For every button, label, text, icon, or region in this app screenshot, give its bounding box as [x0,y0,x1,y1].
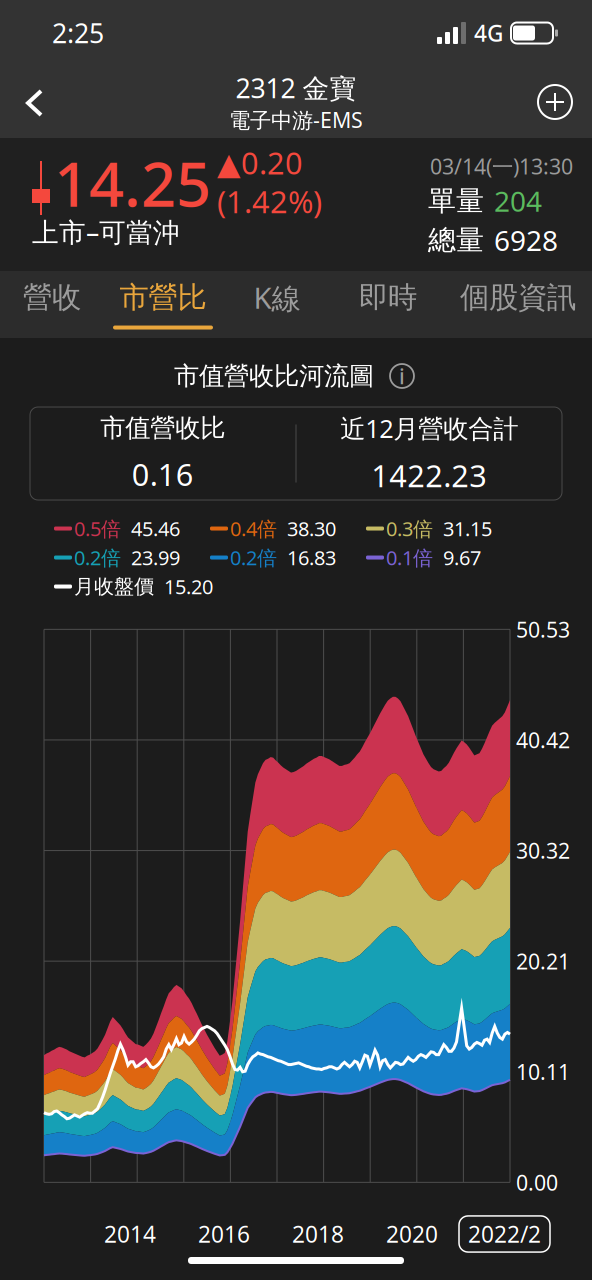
button[interactable]: 即時 [332,271,444,338]
staticText: 即時 [359,279,417,315]
staticText: 9.67 [443,544,481,571]
staticText: 單量 [428,184,484,218]
staticText: 個股資訊 [460,279,576,315]
staticText: 0.3倍 [386,515,433,542]
button[interactable]: Add to watchlist [532,79,578,125]
staticText: 近12月營收合計 [340,411,518,445]
button[interactable]: K線 [222,271,332,338]
staticText: 0.2倍 [230,544,277,571]
staticText: 2014 [104,1219,156,1249]
staticText: 市值營收比 [100,413,225,444]
staticText: 電子中游-EMS [229,105,363,134]
staticText: 23.99 [131,544,180,571]
staticText: 市營比 [119,279,206,315]
button[interactable]: 市營比 [104,271,222,338]
staticText: 15.20 [164,573,213,600]
staticText: 上市–可當沖 [32,214,180,249]
staticText: 2022/2 [468,1219,541,1249]
staticText: 10.11 [516,1058,570,1086]
staticText: 204 [494,182,542,219]
staticText: 2018 [292,1219,344,1249]
staticText: 6928 [494,221,558,259]
staticText: i [399,362,405,390]
button[interactable]: Chart info [386,360,418,392]
staticText: 市值營收比河流圖 [174,360,374,391]
button[interactable]: 個股資訊 [444,271,592,338]
staticText: (1.42%) [217,181,322,222]
staticText: 45.46 [131,515,180,542]
button[interactable]: 營收 [0,271,104,338]
staticText: 2:25 [52,15,104,51]
staticText: K線 [253,278,300,317]
staticText: 0.2倍 [74,544,121,571]
staticText: 38.30 [287,515,336,542]
staticText: 20.21 [516,947,570,975]
staticText: ▲0.20 [217,142,303,183]
staticText: 50.53 [516,615,570,643]
staticText: 營收 [23,279,81,315]
staticText: 0.5倍 [74,515,121,542]
staticText: 0.16 [132,454,194,494]
staticText: 14.25 [54,142,211,224]
staticText: 16.83 [287,544,336,571]
staticText: 2020 [386,1219,438,1249]
button[interactable]: Back [14,77,60,127]
staticText: 03/14(一)13:30 [430,152,573,180]
staticText: 月收盤價 [74,574,154,599]
staticText: 40.42 [516,726,570,754]
staticText: 1422.23 [371,455,487,496]
staticText: 0.00 [516,1168,558,1196]
staticText: 31.15 [443,515,492,542]
staticText: 4G [474,18,503,48]
staticText: 2312 金寶 [235,70,356,105]
staticText: 0.4倍 [230,515,277,542]
staticText: 2016 [198,1219,250,1249]
staticText: 0.1倍 [386,544,433,571]
staticText: 30.32 [516,836,570,865]
staticText: 總量 [428,223,484,257]
